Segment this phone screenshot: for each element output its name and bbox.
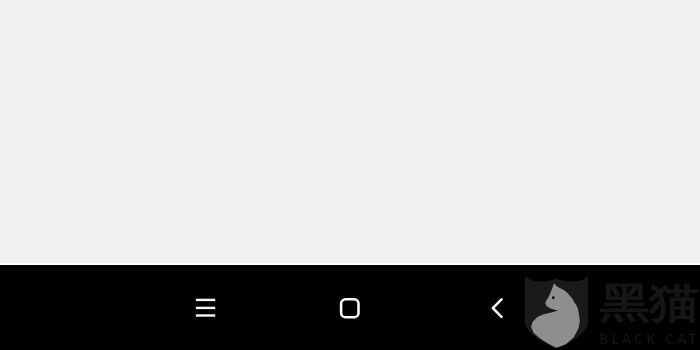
staticText: BLACK CAT [599,329,700,348]
staticText: 黑猫 [599,278,698,331]
button[interactable]: Back [477,287,518,328]
button[interactable]: Recent apps [185,287,226,328]
button[interactable]: Home [329,287,370,328]
